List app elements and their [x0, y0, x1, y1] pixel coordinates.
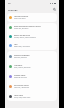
- staticText: Storage, Memory, Device protection: [14, 37, 36, 39]
- staticText: Advanced Protection: [14, 15, 29, 17]
- button[interactable]: Accessibility: [7, 61, 57, 71]
- staticText: Secure your device: [14, 18, 26, 20]
- button[interactable]: Tips and user manual: [7, 81, 57, 91]
- staticText: Apps: [14, 43, 18, 45]
- staticText: Useful tips, New features: [14, 87, 30, 89]
- staticText: Download and install: [14, 77, 27, 79]
- staticText: Vision, Hearing, Interaction: [14, 67, 31, 69]
- staticText: About phone: [14, 94, 23, 96]
- button[interactable]: Apps: [7, 41, 57, 50]
- staticText: Status, Legal, Phone name: [14, 97, 31, 99]
- button[interactable]: Network management: [7, 51, 57, 61]
- button[interactable]: Software update: [7, 71, 57, 81]
- staticText: Battery and device care: [14, 34, 31, 36]
- staticText: Network management: [14, 54, 30, 56]
- staticText: 9:41: [8, 2, 12, 4]
- button[interactable]: Search: [51, 6, 57, 12]
- staticText: Digital Wellbeing and parental controls: [14, 25, 41, 27]
- button[interactable]: About phone: [7, 91, 57, 101]
- staticText: Screen time, app timers: [14, 28, 29, 30]
- staticText: Data saver, Data limit: [14, 57, 27, 59]
- button[interactable]: Digital Wellbeing and parental controls: [7, 23, 57, 32]
- button[interactable]: Advanced Protection: [7, 13, 57, 22]
- staticText: Accessibility: [14, 64, 23, 66]
- staticText: Settings: [8, 8, 18, 11]
- staticText: Software update: [14, 74, 26, 76]
- button[interactable]: Battery and device care: [7, 32, 57, 41]
- staticText: Default apps, App settings: [14, 46, 31, 48]
- staticText: Tips and user manual: [14, 84, 29, 86]
